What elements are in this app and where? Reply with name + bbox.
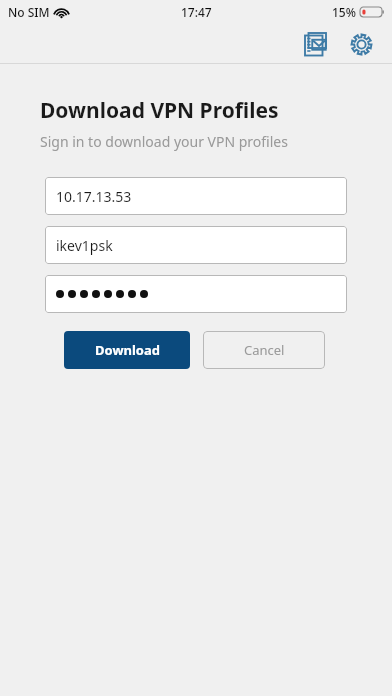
button[interactable]: Settings xyxy=(344,27,378,61)
staticText: 15% xyxy=(332,4,356,20)
button[interactable]: Download xyxy=(64,331,190,369)
staticText: No SIM xyxy=(8,4,50,20)
staticText: Sign in to download your VPN profiles xyxy=(40,132,288,151)
staticText: Download xyxy=(95,341,160,359)
button[interactable]: Cancel xyxy=(203,331,325,369)
staticText: Download VPN Profiles xyxy=(40,96,279,125)
staticText: 10.17.13.53 xyxy=(56,187,132,206)
button[interactable] xyxy=(45,275,347,313)
button[interactable]: ikev1psk xyxy=(45,226,347,264)
staticText: Cancel xyxy=(244,341,285,359)
button[interactable]: Profile request by email xyxy=(298,27,332,61)
staticText: ikev1psk xyxy=(56,236,113,255)
button[interactable]: 10.17.13.53 xyxy=(45,177,347,215)
staticText: 17:47 xyxy=(181,4,212,20)
